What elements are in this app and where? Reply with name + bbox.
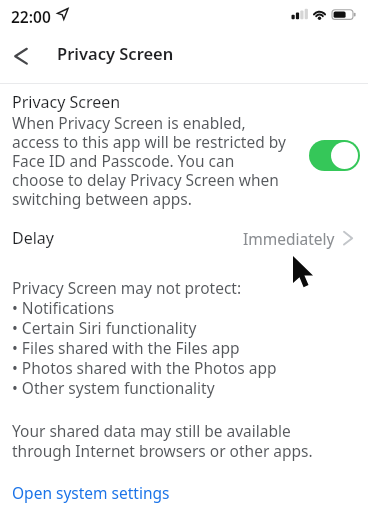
staticText: Your shared data may still be available …: [12, 420, 313, 462]
button[interactable]: Delay: [0, 224, 368, 252]
staticText: Open system settings: [12, 482, 170, 503]
staticText: 22:00: [11, 6, 51, 27]
button[interactable]: [309, 140, 360, 171]
staticText: Privacy Screen may not protect: • Notifi…: [12, 277, 277, 399]
button[interactable]: [4, 36, 44, 76]
staticText: Immediately: [243, 228, 335, 249]
staticText: Privacy Screen: [57, 42, 174, 64]
staticText: Delay: [12, 227, 54, 249]
staticText: When Privacy Screen is enabled, access t…: [12, 112, 286, 210]
staticText: Privacy Screen: [12, 91, 121, 113]
button[interactable]: Open system settings: [6, 478, 176, 507]
